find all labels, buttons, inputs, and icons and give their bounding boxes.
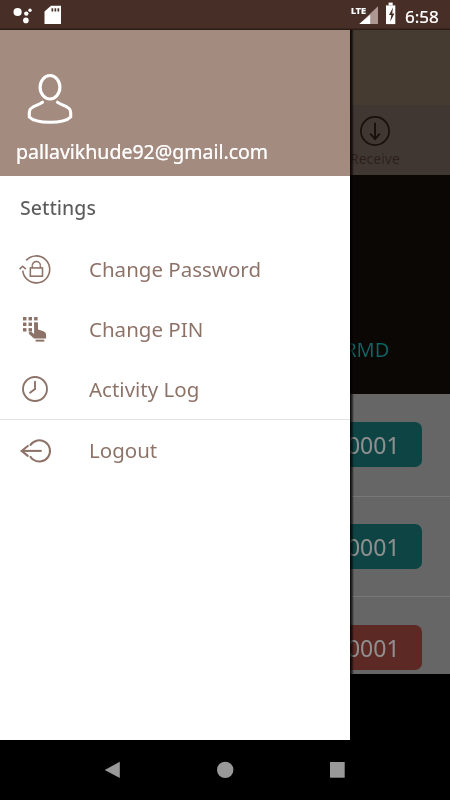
staticText: Change PIN [89, 315, 204, 343]
staticText: XXXX0001 [293, 531, 400, 562]
staticText: Settings [20, 194, 96, 221]
staticText: Activity Log [89, 375, 200, 403]
button[interactable]: Change Password [0, 239, 350, 299]
staticText: Logout [89, 436, 158, 464]
button[interactable]: Logout [0, 420, 350, 480]
staticText: XXXX0001 [293, 632, 400, 663]
staticText: pallavikhude92@gmail.com [16, 138, 269, 165]
button[interactable]: XXXX0001 [272, 524, 422, 569]
button[interactable]: XXXX0001 [272, 422, 422, 467]
button[interactable]: XXXX0001 [272, 625, 422, 670]
staticText: TERM DEPOSIT / RMD [186, 336, 390, 363]
staticText: Receive [350, 149, 400, 168]
staticText: 6:58 [405, 5, 439, 28]
staticText: XXXX0001 [293, 429, 400, 460]
button[interactable]: Activity Log [0, 359, 350, 419]
staticText: LTE [351, 4, 367, 16]
staticText: Change Password [89, 255, 262, 283]
button[interactable]: Receive [344, 116, 406, 168]
button[interactable]: Change PIN [0, 299, 350, 359]
